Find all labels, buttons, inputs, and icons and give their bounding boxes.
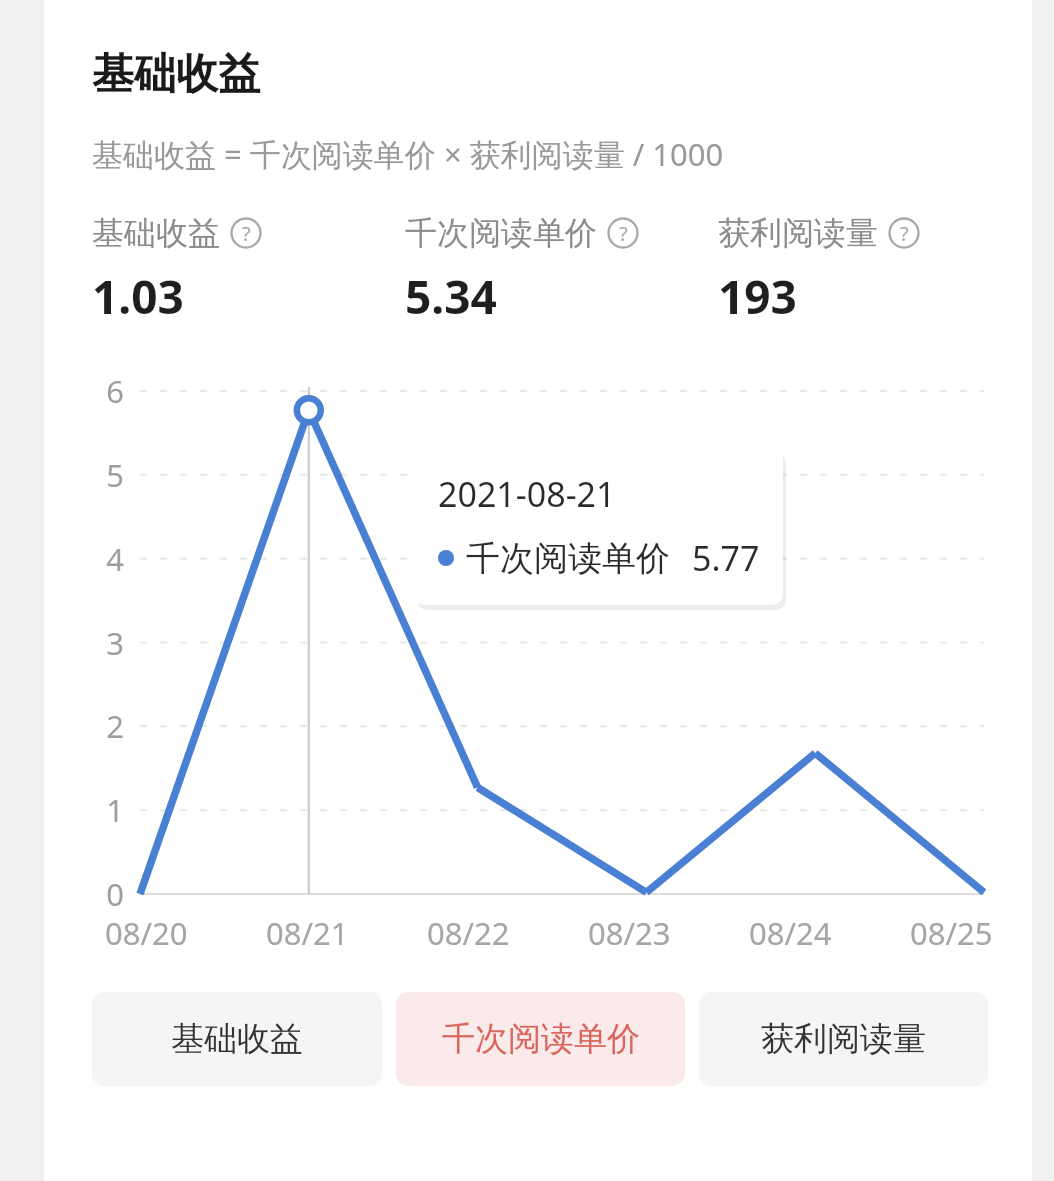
staticText: 6 — [106, 370, 124, 412]
staticText: 基础收益 = 千次阅读单价 × 获利阅读量 / 1000 — [92, 133, 724, 175]
button[interactable]: 帮助说明 — [607, 217, 639, 249]
staticText: ? — [619, 220, 628, 247]
staticText: 08/20 — [105, 912, 188, 954]
staticText: 3 — [106, 622, 124, 664]
staticText: 08/21 — [266, 912, 349, 954]
button[interactable]: 获利阅读量 — [718, 213, 1018, 328]
staticText: 获利阅读量 — [761, 1018, 926, 1060]
button[interactable]: 帮助说明 — [230, 217, 262, 249]
staticText: 千次阅读单价 — [442, 1018, 640, 1060]
staticText: ? — [242, 220, 251, 247]
staticText: 基础收益 — [92, 48, 260, 101]
staticText: 08/25 — [910, 912, 993, 954]
staticText: 基础收益 — [92, 213, 220, 253]
button[interactable]: 获利阅读量 — [699, 992, 988, 1086]
staticText: 5 — [106, 454, 124, 496]
staticText: 193 — [718, 265, 797, 328]
staticText: 0 — [106, 873, 124, 915]
button[interactable]: 千次阅读单价 — [405, 213, 718, 328]
staticText: 2021-08-21 — [438, 471, 616, 517]
staticText: ? — [900, 220, 909, 247]
button[interactable]: 千次阅读单价 — [396, 992, 685, 1086]
staticText: 千次阅读单价 — [466, 537, 670, 580]
staticText: 基础收益 — [171, 1018, 303, 1060]
staticText: 08/22 — [427, 912, 510, 954]
staticText: 08/23 — [588, 912, 671, 954]
staticText: 5.77 — [692, 535, 760, 581]
staticText: 4 — [106, 538, 124, 580]
staticText: 千次阅读单价 — [405, 213, 597, 253]
button[interactable]: 帮助说明 — [888, 217, 920, 249]
staticText: 5.34 — [405, 265, 497, 328]
staticText: 1.03 — [92, 265, 184, 328]
button[interactable]: 基础收益 — [92, 213, 405, 328]
staticText: 2 — [106, 705, 124, 747]
staticText: 1 — [106, 789, 124, 831]
button[interactable]: 基础收益 — [92, 992, 382, 1086]
staticText: 08/24 — [749, 912, 832, 954]
staticText: 获利阅读量 — [718, 213, 878, 253]
